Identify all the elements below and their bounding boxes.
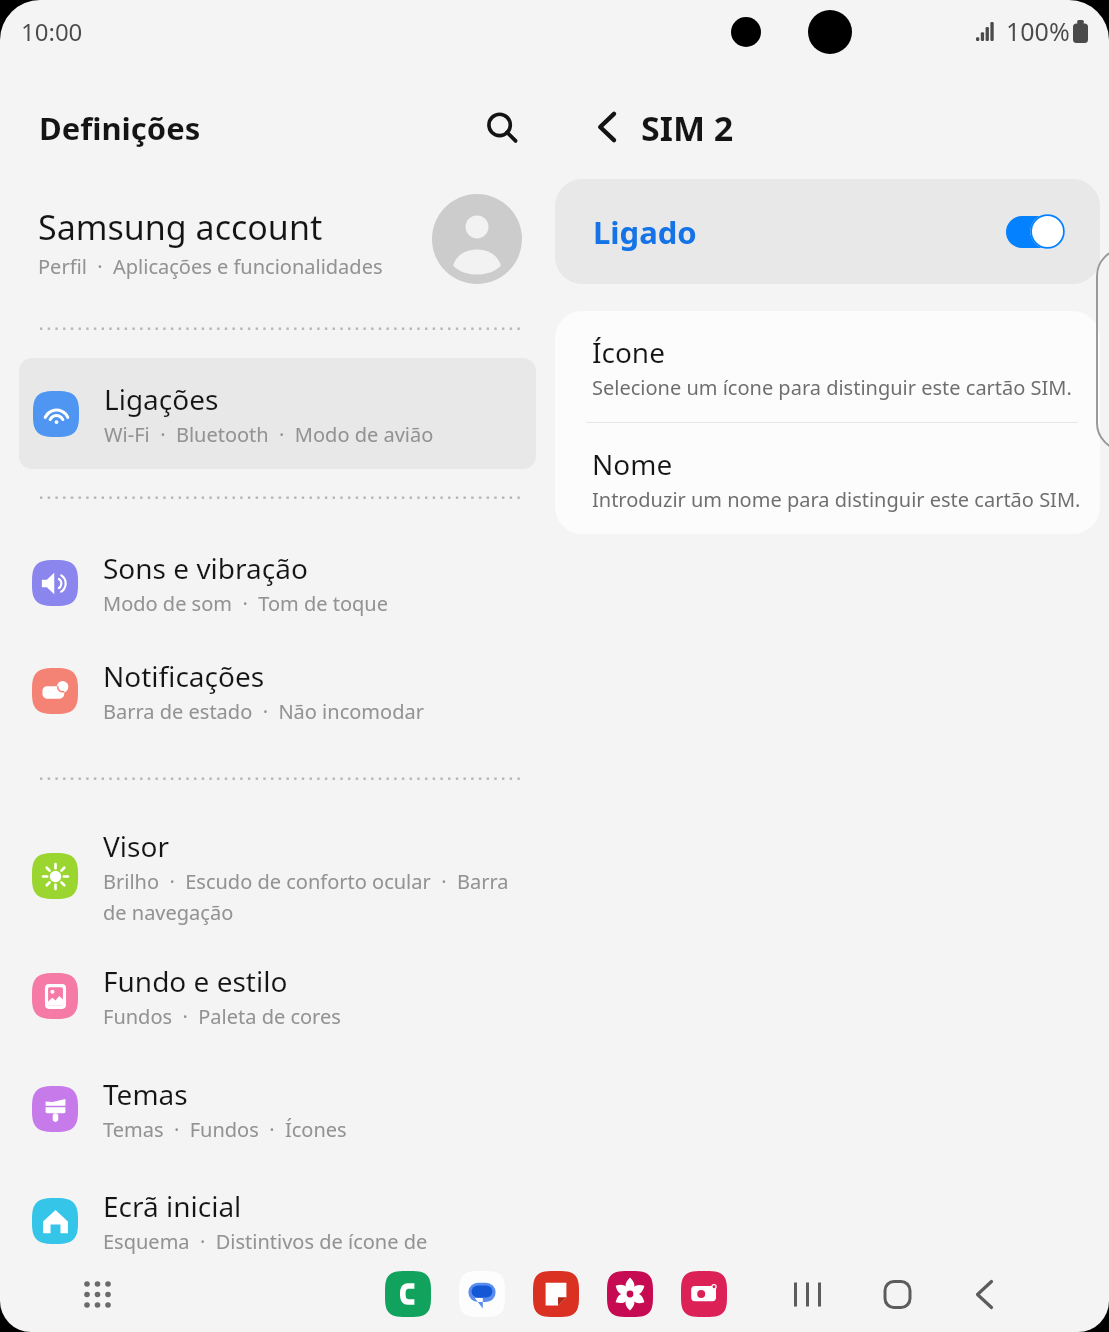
- button[interactable]: Voltar: [964, 1271, 1010, 1317]
- staticText: Nome: [592, 445, 673, 483]
- staticText: 10:00: [21, 15, 83, 48]
- button[interactable]: Sons e vibração: [0, 533, 540, 633]
- staticText: Temas · Fundos · Ícones: [103, 1116, 347, 1143]
- button[interactable]: Fundo e estilo: [0, 946, 540, 1046]
- staticText: Brilho · Escudo de conforto ocular · Bar…: [103, 868, 509, 925]
- staticText: Temas: [103, 1075, 188, 1113]
- button[interactable]: GALLERY: [607, 1271, 653, 1317]
- button[interactable]: Ligado: [555, 179, 1100, 284]
- button[interactable]: Ecrã inicial: [0, 1171, 540, 1271]
- staticText: Ligado: [593, 211, 697, 253]
- button[interactable]: PHONE: [385, 1271, 431, 1317]
- staticText: Fundo e estilo: [103, 962, 288, 1000]
- button[interactable]: CAMERA: [681, 1271, 727, 1317]
- button[interactable]: Pesquisar: [474, 100, 530, 156]
- staticText: Samsung account: [38, 204, 323, 250]
- staticText: Selecione um ícone para distinguir este …: [592, 374, 1072, 401]
- button[interactable]: Notificações: [0, 641, 540, 741]
- staticText: SIM 2: [641, 105, 734, 151]
- button[interactable]: MSG: [459, 1271, 505, 1317]
- button[interactable]: Aplicações: [71, 1268, 123, 1320]
- staticText: Modo de som · Tom de toque: [103, 590, 388, 617]
- staticText: Ícone: [592, 333, 665, 371]
- staticText: Esquema · Distintivos de ícone de: [103, 1228, 428, 1255]
- button[interactable]: Temas: [0, 1059, 540, 1159]
- button[interactable]: Ícone: [555, 311, 1100, 422]
- button[interactable]: Ligações: [19, 358, 536, 469]
- staticText: Barra de estado · Não incomodar: [103, 698, 424, 725]
- button[interactable]: Recentes: [784, 1271, 830, 1317]
- button[interactable]: Voltar: [581, 100, 635, 154]
- staticText: Introduzir um nome para distinguir este …: [592, 486, 1081, 513]
- button[interactable]: Nome: [555, 423, 1100, 534]
- staticText: Fundos · Paleta de cores: [103, 1003, 341, 1030]
- staticText: Notificações: [103, 657, 265, 695]
- staticText: Ligações: [104, 380, 219, 418]
- button[interactable]: Início: [874, 1271, 920, 1317]
- staticText: Definições: [39, 107, 201, 149]
- staticText: Ecrã inicial: [103, 1187, 242, 1225]
- staticText: Perfil · Aplicações e funcionalidades: [38, 253, 383, 280]
- staticText: 100%: [1006, 14, 1070, 48]
- staticText: Visor: [103, 827, 169, 865]
- button[interactable]: Samsung account: [0, 178, 540, 300]
- staticText: Wi-Fi · Bluetooth · Modo de avião: [104, 421, 434, 448]
- button[interactable]: NOTES: [533, 1271, 579, 1317]
- staticText: Sons e vibração: [103, 549, 308, 587]
- button[interactable]: Visor: [0, 814, 540, 938]
